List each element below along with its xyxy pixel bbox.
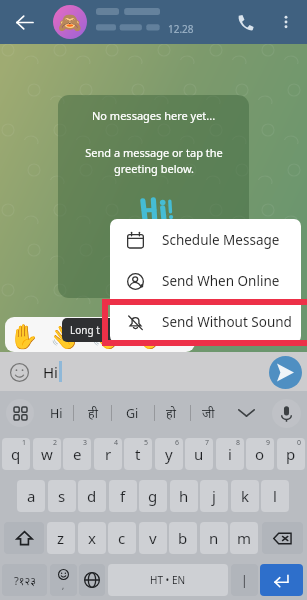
- staticText: w: [41, 444, 53, 464]
- staticText: z: [57, 528, 65, 548]
- staticText: 12.28: [168, 22, 194, 36]
- button[interactable]: More suggestions: [232, 399, 260, 427]
- button[interactable]: i: [216, 438, 244, 470]
- button[interactable]: o: [246, 438, 274, 470]
- staticText: Gi: [126, 405, 139, 422]
- button[interactable]: Call: [227, 4, 263, 40]
- button[interactable]: Profile photo: [53, 5, 87, 39]
- staticText: ही: [88, 405, 98, 422]
- staticText: Send Without Sound: [162, 313, 292, 331]
- staticText: ,: [62, 580, 65, 591]
- button[interactable]: h: [170, 480, 198, 512]
- staticText: ?१२३: [14, 573, 36, 588]
- button[interactable]: x: [78, 522, 106, 554]
- staticText: Send a message or tap the greeting below…: [85, 145, 223, 177]
- staticText: k: [241, 486, 250, 506]
- staticText: l: [273, 486, 277, 506]
- button[interactable]: f: [109, 480, 137, 512]
- button[interactable]: |: [231, 564, 258, 596]
- button[interactable]: e: [63, 438, 91, 470]
- button[interactable]: Send: [269, 356, 302, 389]
- staticText: y: [165, 444, 173, 464]
- staticText: i: [228, 444, 232, 464]
- button[interactable]: d: [78, 480, 106, 512]
- button[interactable]: Clipboard: [6, 399, 34, 427]
- button[interactable]: ✋: [5, 317, 195, 352]
- staticText: 👋: [132, 323, 162, 351]
- staticText: हो: [166, 405, 176, 422]
- staticText: t: [135, 444, 141, 464]
- staticText: e: [73, 444, 82, 464]
- staticText: a: [27, 486, 36, 506]
- staticText: v: [149, 528, 157, 548]
- button[interactable]: Hi: [42, 398, 70, 428]
- staticText: b: [178, 528, 188, 548]
- staticText: Hi: [43, 362, 58, 382]
- button[interactable]: Enter: [260, 564, 303, 596]
- button[interactable]: n: [200, 522, 228, 554]
- button[interactable]: b: [169, 522, 197, 554]
- staticText: |: [241, 572, 248, 588]
- button[interactable]: Symbols: [2, 564, 47, 596]
- button[interactable]: जी: [195, 398, 222, 428]
- staticText: p: [286, 444, 296, 464]
- staticText: Long t: [70, 323, 100, 337]
- button[interactable]: l: [261, 480, 289, 512]
- button[interactable]: a: [17, 480, 45, 512]
- button[interactable]: Backspace: [262, 522, 303, 554]
- button[interactable]: z: [47, 522, 75, 554]
- staticText: Send When Online: [162, 272, 280, 290]
- button[interactable]: v: [139, 522, 167, 554]
- button[interactable]: t: [124, 438, 152, 470]
- staticText: 👋: [50, 323, 80, 351]
- staticText: Schedule Message: [162, 231, 280, 249]
- button[interactable]: More options: [269, 5, 303, 39]
- staticText: m: [237, 528, 252, 548]
- button[interactable]: Gi: [118, 398, 146, 428]
- staticText: 1: [22, 438, 27, 448]
- button[interactable]: Shift: [4, 522, 44, 554]
- staticText: जी: [202, 405, 215, 422]
- button[interactable]: ही: [80, 398, 106, 428]
- button[interactable]: p: [277, 438, 305, 470]
- button[interactable]: हो: [158, 398, 184, 428]
- button[interactable]: w: [33, 438, 61, 470]
- staticText: 2: [53, 438, 58, 448]
- button[interactable]: Voice input: [272, 399, 301, 428]
- staticText: r: [105, 444, 112, 464]
- button[interactable]: Back: [4, 2, 44, 42]
- button[interactable]: m: [230, 522, 258, 554]
- staticText: d: [87, 486, 97, 506]
- button[interactable]: Send When Online: [110, 260, 301, 301]
- button[interactable]: q: [2, 438, 30, 470]
- button[interactable]: j: [200, 480, 228, 512]
- staticText: c: [118, 528, 126, 548]
- button[interactable]: s: [48, 480, 76, 512]
- staticText: 0: [297, 438, 302, 448]
- staticText: 3: [83, 438, 88, 448]
- button[interactable]: Emoji: [5, 358, 33, 386]
- staticText: n: [209, 528, 219, 548]
- button[interactable]: c: [108, 522, 136, 554]
- staticText: 8: [236, 438, 241, 448]
- staticText: j: [212, 486, 216, 506]
- staticText: No messages here yet...: [92, 108, 216, 123]
- staticText: o: [255, 444, 265, 464]
- button[interactable]: Schedule Message: [110, 219, 301, 260]
- button[interactable]: Send Without Sound: [110, 301, 301, 342]
- button[interactable]: Space: [108, 564, 228, 596]
- button[interactable]: Emoji keyboard: [50, 564, 77, 596]
- button[interactable]: Change language: [79, 564, 105, 596]
- staticText: h: [179, 486, 189, 506]
- button[interactable]: u: [185, 438, 213, 470]
- staticText: 5: [144, 438, 149, 448]
- button[interactable]: y: [155, 438, 183, 470]
- staticText: 7: [205, 438, 210, 448]
- staticText: x: [88, 528, 96, 548]
- staticText: 6: [175, 438, 180, 448]
- button[interactable]: k: [231, 480, 259, 512]
- button[interactable]: g: [139, 480, 167, 512]
- staticText: 4: [114, 438, 119, 448]
- staticText: f: [120, 486, 126, 506]
- button[interactable]: r: [94, 438, 122, 470]
